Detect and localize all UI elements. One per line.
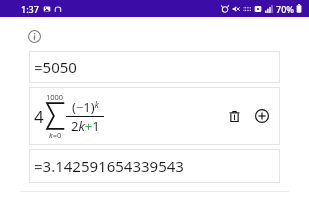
button[interactable]: Delete	[224, 106, 244, 126]
staticText: =5050	[34, 57, 77, 77]
staticText: k=0	[49, 130, 62, 140]
staticText: 2k+1	[71, 117, 100, 135]
staticText: 1:37	[21, 3, 39, 15]
staticText: =3.142591654339543	[34, 156, 184, 176]
staticText: 70%	[276, 3, 294, 15]
button[interactable]: Information	[24, 26, 44, 46]
button[interactable]: Add	[252, 106, 272, 126]
staticText: 1000	[46, 92, 64, 102]
button[interactable]: =5050	[29, 51, 280, 83]
button[interactable]: 4	[29, 87, 280, 145]
staticText: (−1)k	[72, 98, 99, 116]
button[interactable]: =3.142591654339543	[29, 149, 280, 183]
staticText: 4	[34, 105, 44, 128]
